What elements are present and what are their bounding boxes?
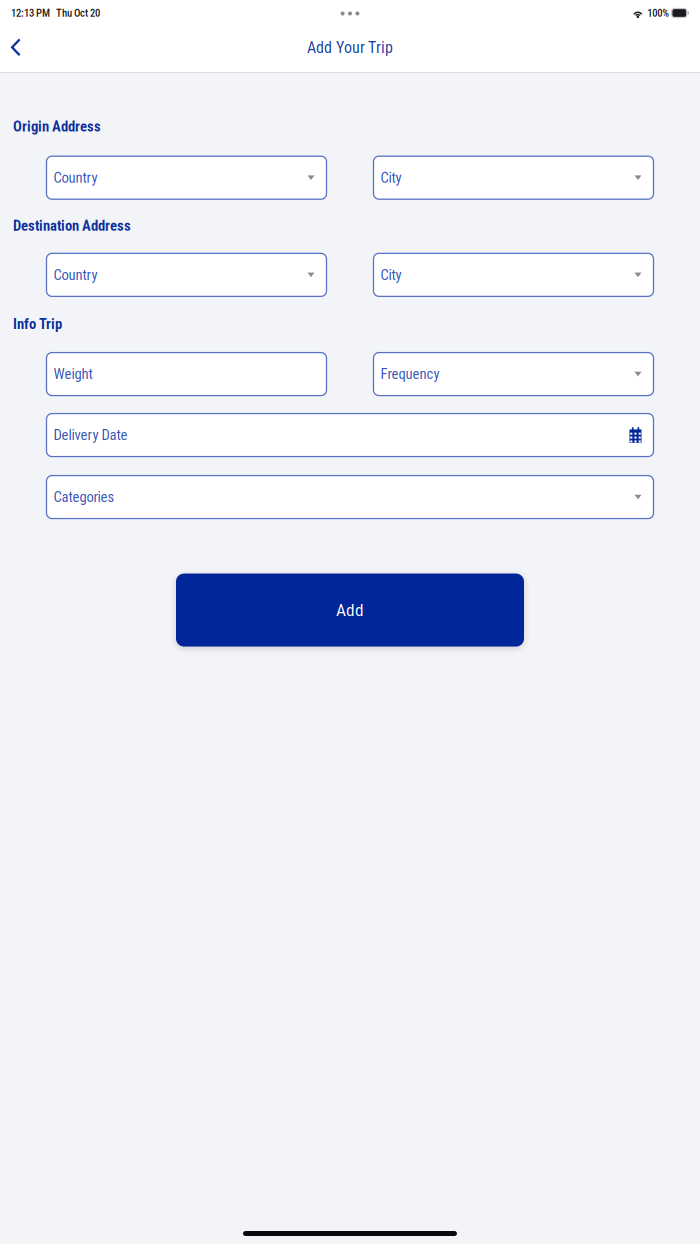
staticText: Destination Address	[13, 217, 131, 234]
staticText: Country	[53, 169, 97, 186]
staticText: Info Trip	[13, 315, 62, 333]
staticText: Weight	[53, 365, 92, 383]
staticText: Add Your Trip	[307, 38, 393, 57]
button[interactable]: Frequency	[373, 353, 653, 396]
staticText: Frequency	[380, 365, 439, 383]
button[interactable]: Delivery Date	[46, 414, 653, 457]
staticText: City	[380, 169, 401, 186]
staticText: Delivery Date	[53, 426, 127, 444]
staticText: Thu Oct 20	[56, 7, 100, 19]
staticText: 12:13 PM	[11, 7, 50, 19]
button[interactable]: City	[373, 156, 653, 199]
staticText: Origin Address	[13, 118, 101, 135]
button[interactable]: Weight	[46, 353, 326, 396]
staticText: Categories	[53, 488, 114, 506]
button[interactable]: Back	[0, 27, 35, 71]
button[interactable]: City	[373, 253, 653, 296]
staticText: Country	[53, 266, 97, 283]
staticText: 100%	[647, 7, 669, 19]
button[interactable]: Country	[46, 253, 326, 296]
staticText: Add	[336, 600, 364, 620]
button[interactable]: Categories	[46, 476, 653, 519]
button[interactable]: Country	[46, 156, 326, 199]
staticText: City	[380, 266, 401, 283]
button[interactable]: Add	[176, 574, 524, 647]
